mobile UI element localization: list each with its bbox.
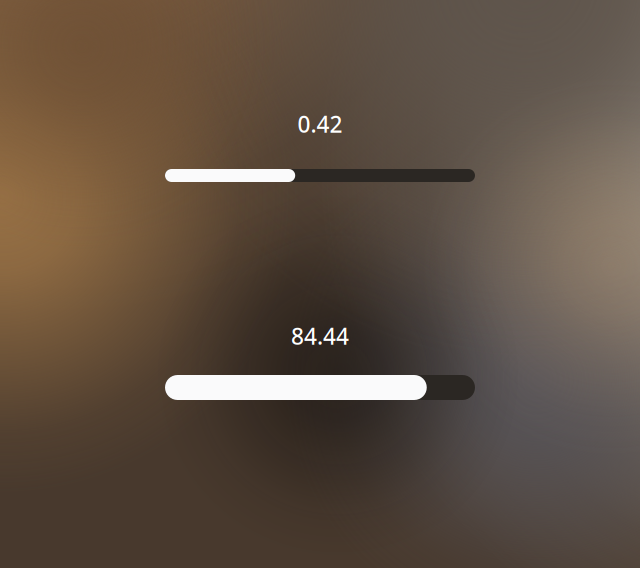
button[interactable]: Progress slider <box>165 169 475 182</box>
staticText: 0.42 <box>297 109 342 139</box>
staticText: 84.44 <box>291 321 349 351</box>
button[interactable]: Progress slider <box>165 375 475 400</box>
